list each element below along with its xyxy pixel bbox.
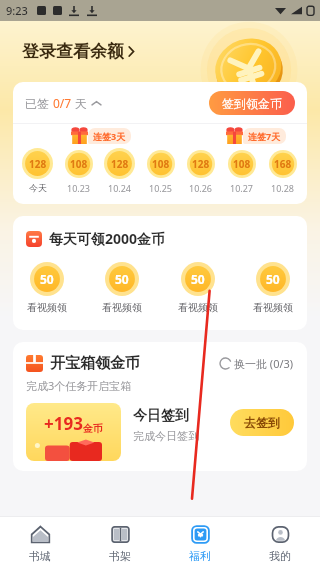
staticText: 今天: [29, 182, 47, 193]
button[interactable]: 50: [27, 262, 67, 314]
button[interactable]: 福利: [160, 517, 240, 569]
button[interactable]: 已签: [25, 95, 101, 111]
staticText: 看视频领: [102, 301, 142, 314]
button[interactable]: 50: [253, 262, 293, 314]
staticText: 天: [72, 95, 88, 111]
staticText: 已签: [25, 95, 53, 111]
staticText: 连签7天: [248, 130, 281, 142]
staticText: 10.27: [230, 182, 254, 194]
staticText: 10.26: [189, 182, 213, 194]
staticText: 每天可领2000金币: [49, 229, 166, 248]
staticText: 金币: [83, 422, 103, 435]
staticText: 看视频领: [253, 301, 293, 314]
button[interactable]: +193: [26, 403, 121, 461]
button[interactable]: 书城: [0, 517, 80, 569]
button[interactable]: 书架: [80, 517, 160, 569]
staticText: 108: [233, 157, 251, 171]
button[interactable]: 108: [144, 148, 177, 194]
staticText: 换一批 (0/3): [234, 356, 294, 371]
staticText: 开宝箱领金币: [50, 354, 140, 373]
staticText: 168: [274, 157, 292, 171]
staticText: 50: [266, 271, 280, 287]
button[interactable]: 50: [102, 262, 142, 314]
staticText: 10.23: [67, 182, 91, 194]
staticText: 10.28: [271, 182, 295, 194]
staticText: 我的: [269, 549, 291, 563]
button[interactable]: 登录查看余额: [22, 41, 136, 62]
button[interactable]: 每天可领2000金币: [26, 229, 166, 248]
button[interactable]: 128: [184, 148, 217, 194]
staticText: 看视频领: [178, 301, 218, 314]
staticText: +193: [44, 412, 83, 435]
button[interactable]: 168: [266, 148, 299, 194]
staticText: 50: [115, 271, 129, 287]
button[interactable]: 108: [225, 148, 258, 194]
staticText: 登录查看余额: [22, 41, 124, 62]
staticText: 书架: [109, 549, 131, 563]
button[interactable]: 50: [178, 262, 218, 314]
button[interactable]: 128: [103, 148, 136, 194]
staticText: 今日签到: [133, 407, 189, 425]
staticText: 108: [70, 157, 88, 171]
staticText: 108: [152, 157, 170, 171]
button[interactable]: 去签到: [230, 409, 294, 436]
staticText: 完成3个任务开启宝箱: [26, 378, 132, 393]
button[interactable]: 108: [62, 148, 95, 194]
staticText: 福利: [189, 549, 211, 563]
staticText: 50: [191, 271, 205, 287]
staticText: 签到领金币: [222, 96, 282, 111]
staticText: 10.24: [108, 182, 132, 194]
button[interactable]: 换一批 (0/3): [220, 356, 294, 371]
staticText: 看视频领: [27, 301, 67, 314]
button[interactable]: 签到领金币: [209, 91, 295, 115]
staticText: 128: [111, 157, 129, 171]
staticText: 9:23: [6, 3, 28, 18]
staticText: 连签3天: [93, 130, 126, 142]
staticText: 128: [192, 157, 210, 171]
staticText: 10.25: [149, 182, 173, 194]
staticText: 128: [29, 157, 47, 171]
staticText: 书城: [29, 549, 51, 563]
staticText: 0/7: [53, 95, 72, 111]
staticText: 50: [40, 271, 54, 287]
button[interactable]: 我的: [240, 517, 320, 569]
staticText: 去签到: [244, 415, 280, 430]
staticText: 完成今日签到: [133, 429, 199, 443]
button[interactable]: 128: [21, 148, 54, 193]
